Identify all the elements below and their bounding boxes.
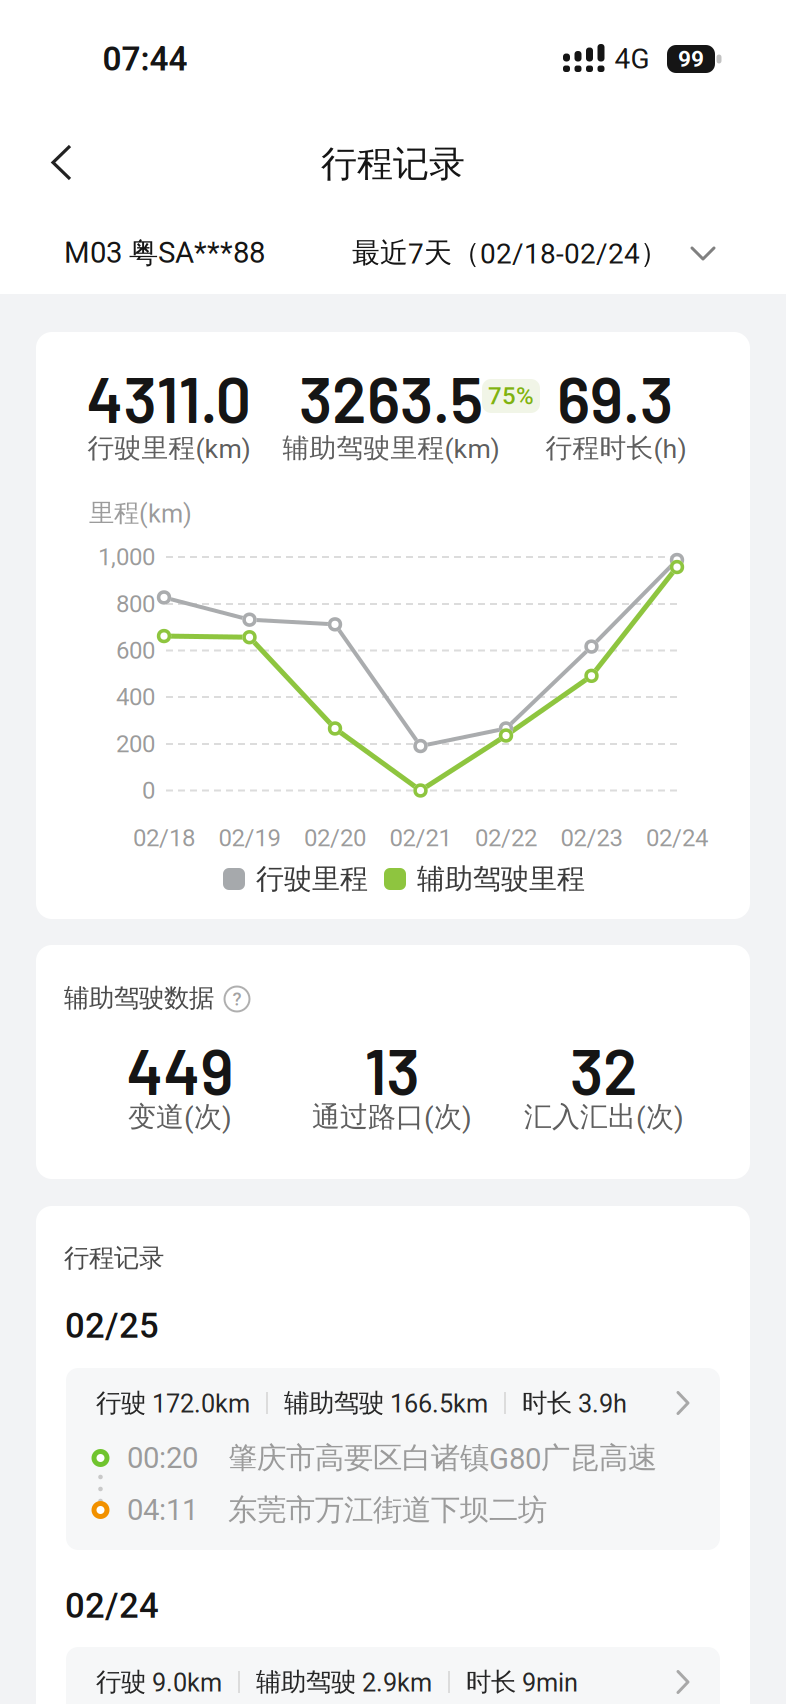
staticText: 02/22 <box>475 824 537 852</box>
staticText: 行程记录 <box>64 1242 164 1273</box>
staticText: 600 <box>116 637 155 664</box>
button[interactable]: 说明 <box>223 985 251 1013</box>
staticText: 3263.5 <box>299 360 483 436</box>
staticText: 32 <box>570 1032 638 1108</box>
button[interactable]: 返回 <box>39 141 95 184</box>
staticText: 东莞市万江街道下坝二坊 <box>228 1492 547 1528</box>
staticText: 02/19 <box>218 824 280 852</box>
staticText: 02/23 <box>560 824 622 852</box>
staticText: 行程记录 <box>321 142 465 186</box>
staticText: 69.3 <box>557 360 673 436</box>
staticText: 02/24 <box>646 824 708 852</box>
staticText: 行驶 9.0km <box>96 1666 222 1697</box>
staticText: 07:44 <box>102 40 187 78</box>
button[interactable]: M03 粤SA***88 <box>64 235 324 271</box>
staticText: 变道(次) <box>128 1100 232 1134</box>
staticText: 04:11 <box>127 1493 198 1527</box>
staticText: 13 <box>364 1032 419 1108</box>
staticText: 行驶里程 <box>256 862 368 896</box>
staticText: 时长 9min <box>466 1666 578 1697</box>
staticText: 200 <box>116 730 155 758</box>
staticText: 通过路口(次) <box>312 1100 472 1134</box>
button[interactable]: 最近7天（02/18-02/24） <box>352 229 724 277</box>
staticText: 00:20 <box>127 1441 198 1475</box>
staticText: 1,000 <box>98 543 155 571</box>
staticText: 最近7天（02/18-02/24） <box>352 236 668 270</box>
staticText: 4311.0 <box>86 360 251 436</box>
staticText: 行驶 172.0km <box>96 1387 250 1418</box>
staticText: 02/21 <box>389 824 451 852</box>
staticText: 辅助驾驶里程(km) <box>282 432 499 464</box>
staticText: 99 <box>678 46 704 72</box>
staticText: 0 <box>142 777 155 804</box>
staticText: 02/20 <box>304 824 366 852</box>
staticText: 02/18 <box>133 824 195 852</box>
staticText: ? <box>232 988 241 1010</box>
staticText: 辅助驾驶数据 <box>64 982 214 1013</box>
staticText: 行驶里程(km) <box>87 432 250 464</box>
staticText: 800 <box>116 590 155 618</box>
staticText: 400 <box>116 683 155 711</box>
staticText: 75% <box>488 382 534 410</box>
staticText: 汇入汇出(次) <box>524 1100 684 1134</box>
staticText: 02/24 <box>65 1586 159 1626</box>
staticText: 里程(km) <box>89 497 192 528</box>
staticText: 辅助驾驶 166.5km <box>284 1387 488 1418</box>
staticText: 449 <box>126 1032 233 1108</box>
staticText: M03 粤SA***88 <box>64 235 265 271</box>
button[interactable]: 行驶 9.0km <box>66 1647 720 1704</box>
staticText: 肇庆市高要区白诸镇G80广昆高速 <box>228 1440 657 1476</box>
staticText: 行程时长(h) <box>545 432 686 464</box>
staticText: 辅助驾驶 2.9km <box>256 1666 432 1697</box>
button[interactable]: 行驶 172.0km <box>66 1368 720 1550</box>
staticText: 时长 3.9h <box>522 1387 627 1418</box>
staticText: 辅助驾驶里程 <box>417 862 585 896</box>
staticText: 4G <box>614 43 649 75</box>
staticText: 02/25 <box>65 1306 159 1346</box>
